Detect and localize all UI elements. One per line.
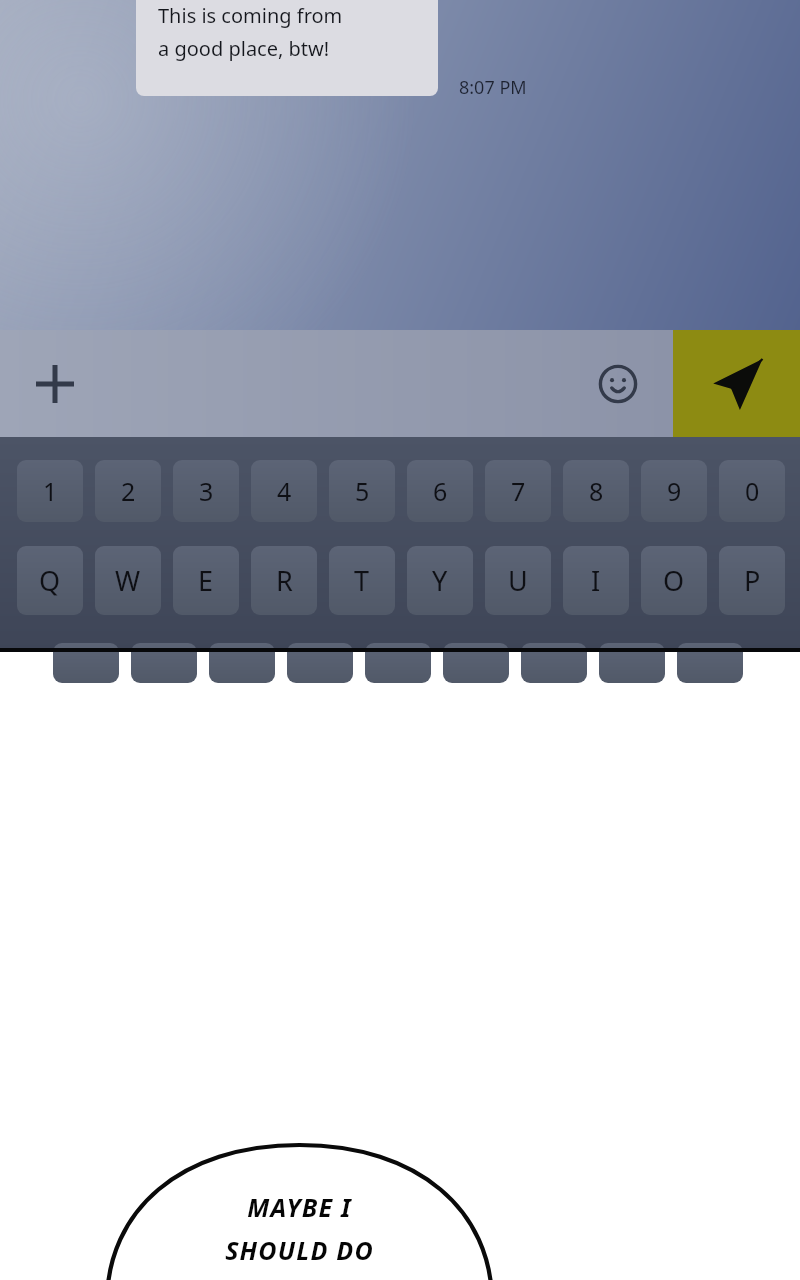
button[interactable]: Q xyxy=(17,546,83,615)
staticText: I xyxy=(591,562,601,599)
staticText: 9 xyxy=(667,474,682,508)
button[interactable]: E xyxy=(173,546,239,615)
staticText: 2 xyxy=(121,474,136,508)
button[interactable]: Send xyxy=(673,330,800,437)
staticText: 6 xyxy=(433,474,448,508)
button[interactable]: W xyxy=(95,546,161,615)
button[interactable]: R xyxy=(251,546,317,615)
button[interactable] xyxy=(521,643,587,683)
button[interactable]: Y xyxy=(407,546,473,615)
staticText: 1 xyxy=(43,474,58,508)
button[interactable]: P xyxy=(719,546,785,615)
button[interactable]: 9 xyxy=(641,460,707,522)
staticText: W xyxy=(115,562,141,599)
staticText: 5 xyxy=(355,474,370,508)
staticText: Q xyxy=(39,562,61,599)
button[interactable]: 4 xyxy=(251,460,317,522)
staticText: 4 xyxy=(277,474,292,508)
button[interactable]: O xyxy=(641,546,707,615)
button[interactable] xyxy=(209,643,275,683)
staticText: 8:07 PM xyxy=(459,75,527,100)
button[interactable] xyxy=(677,643,743,683)
button[interactable] xyxy=(53,643,119,683)
button[interactable] xyxy=(131,643,197,683)
button[interactable]: 2 xyxy=(95,460,161,522)
button[interactable]: I xyxy=(563,546,629,615)
button[interactable]: 3 xyxy=(173,460,239,522)
staticText: SHOULD DO xyxy=(225,1233,374,1267)
button[interactable]: Attach xyxy=(25,354,85,414)
staticText: E xyxy=(198,562,214,599)
button[interactable]: 1 xyxy=(17,460,83,522)
button[interactable]: T xyxy=(329,546,395,615)
staticText: R xyxy=(276,562,293,599)
button[interactable]: Emoji xyxy=(590,356,646,412)
staticText: 8 xyxy=(589,474,604,508)
staticText: T xyxy=(354,562,370,599)
staticText: P xyxy=(744,562,761,599)
staticText: U xyxy=(508,562,528,599)
button[interactable] xyxy=(599,643,665,683)
staticText: This is coming from xyxy=(158,2,343,29)
button[interactable]: 5 xyxy=(329,460,395,522)
staticText: MAYBE I xyxy=(247,1190,352,1224)
staticText: 3 xyxy=(199,474,214,508)
button[interactable]: 7 xyxy=(485,460,551,522)
button[interactable] xyxy=(443,643,509,683)
button[interactable] xyxy=(136,0,438,96)
staticText: a good place, btw! xyxy=(158,35,330,62)
button[interactable] xyxy=(365,643,431,683)
button[interactable]: 6 xyxy=(407,460,473,522)
staticText: Y xyxy=(432,562,448,599)
staticText: 7 xyxy=(511,474,526,508)
button[interactable]: U xyxy=(485,546,551,615)
button[interactable]: 0 xyxy=(719,460,785,522)
button[interactable] xyxy=(287,643,353,683)
staticText: 0 xyxy=(745,474,760,508)
button[interactable]: 8 xyxy=(563,460,629,522)
staticText: O xyxy=(663,562,685,599)
